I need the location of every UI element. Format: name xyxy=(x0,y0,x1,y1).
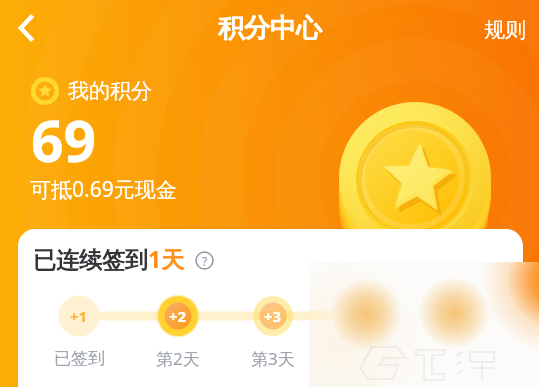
staticText: 积分中心 xyxy=(218,12,322,45)
staticText: +3 xyxy=(264,306,282,326)
staticText: 第3天 xyxy=(251,347,295,369)
staticText: 已连续签到1天 xyxy=(33,243,185,274)
button[interactable]: 规则 xyxy=(484,17,526,43)
staticText: 已签到 xyxy=(54,348,105,369)
staticText: 规则 xyxy=(484,17,526,43)
staticText: 69 xyxy=(31,101,97,179)
staticText: ? xyxy=(202,253,208,269)
staticText: +2 xyxy=(169,306,187,326)
staticText: 我的积分 xyxy=(68,78,152,104)
staticText: 可抵0.69元现金 xyxy=(30,175,177,204)
staticText: 第2天 xyxy=(156,347,200,369)
button[interactable]: Back xyxy=(2,5,48,51)
button[interactable]: Help xyxy=(195,251,214,270)
staticText: +1 xyxy=(70,306,88,326)
